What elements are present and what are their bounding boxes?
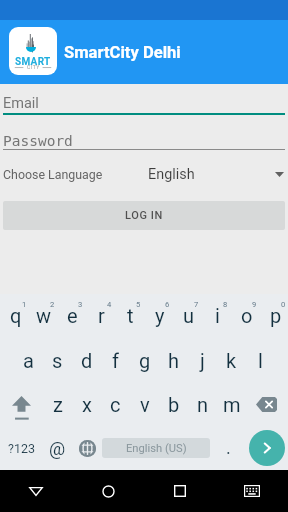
button[interactable]: s [42, 338, 71, 382]
staticText: English [148, 166, 195, 183]
staticText: Choose Language [3, 167, 103, 182]
button[interactable]: j [187, 338, 216, 382]
staticText: k [226, 349, 237, 372]
button[interactable]: Change keyboard language [72, 426, 102, 470]
staticText: d [81, 349, 93, 372]
staticText: LOG IN [125, 209, 163, 222]
staticText: 7 [194, 300, 199, 309]
staticText: . [226, 437, 231, 458]
staticText: 9 [252, 300, 257, 309]
staticText: English (US) [126, 442, 187, 455]
button[interactable]: 0 [259, 294, 288, 338]
staticText: r [98, 304, 105, 327]
button[interactable]: English (US) [102, 438, 210, 458]
staticText: q [10, 304, 22, 327]
staticText: x [82, 393, 92, 416]
staticText: 0 [281, 300, 286, 309]
staticText: @ [49, 438, 66, 459]
button[interactable]: b [158, 382, 187, 426]
staticText: 5 [136, 300, 141, 309]
staticText: 2 [50, 300, 55, 309]
staticText: f [112, 349, 119, 372]
staticText: u [183, 304, 195, 327]
button[interactable]: n [187, 382, 216, 426]
button[interactable]: d [71, 338, 100, 382]
staticText: t [127, 304, 134, 327]
button[interactable]: SmartCity logo [9, 27, 57, 75]
button[interactable]: m [216, 382, 245, 426]
staticText: 4 [107, 300, 112, 309]
button[interactable]: 7 [172, 294, 201, 338]
staticText: b [168, 393, 180, 416]
staticText: 8 [223, 300, 228, 309]
staticText: h [168, 349, 180, 372]
staticText: v [140, 393, 150, 416]
staticText: g [139, 349, 151, 372]
staticText: e [67, 304, 78, 327]
button[interactable]: LOG IN [3, 201, 285, 230]
staticText: w [36, 304, 52, 327]
staticText: 1 [22, 300, 27, 309]
button[interactable]: a [13, 338, 42, 382]
button[interactable]: 9 [230, 294, 259, 338]
button[interactable]: Enter [246, 426, 288, 470]
button[interactable]: 3 [56, 294, 85, 338]
button[interactable]: Choose Language [3, 159, 285, 189]
staticText: a [23, 349, 34, 372]
staticText: SmartCity Delhi [64, 43, 181, 62]
button[interactable]: h [158, 338, 187, 382]
staticText: o [241, 304, 253, 327]
button[interactable]: g [129, 338, 158, 382]
staticText: n [197, 393, 209, 416]
button[interactable]: 8 [201, 294, 230, 338]
staticText: Password [3, 133, 73, 150]
staticText: j [200, 349, 205, 372]
button[interactable]: 4 [85, 294, 114, 338]
staticText: p [270, 304, 282, 327]
staticText: SMART [15, 56, 51, 68]
button[interactable]: Home [72, 470, 144, 512]
staticText: ?123 [8, 441, 35, 456]
button[interactable]: Backspace [245, 382, 288, 426]
button[interactable]: z [42, 382, 71, 426]
button[interactable]: c [100, 382, 129, 426]
staticText: m [223, 393, 241, 416]
button[interactable]: Email [0, 94, 288, 124]
button[interactable]: @ [43, 426, 72, 470]
button[interactable]: Shift [0, 382, 42, 426]
button[interactable]: Recent apps [144, 470, 216, 512]
staticText: 6 [165, 300, 170, 309]
button[interactable]: 2 [28, 294, 56, 338]
staticText: CITY [27, 64, 40, 70]
button[interactable]: 6 [143, 294, 172, 338]
button[interactable]: Keyboard [216, 470, 288, 512]
button[interactable]: ?123 [0, 426, 43, 470]
staticText: 3 [78, 300, 83, 309]
staticText: c [110, 393, 121, 416]
button[interactable]: 5 [114, 294, 143, 338]
button[interactable]: k [216, 338, 245, 382]
button[interactable]: 1 [0, 294, 28, 338]
button[interactable]: . [210, 426, 246, 470]
button[interactable]: Back [0, 470, 72, 512]
button[interactable]: x [71, 382, 100, 426]
staticText: l [258, 349, 263, 372]
staticText: y [155, 304, 165, 327]
button[interactable]: Password [0, 132, 288, 162]
staticText: i [215, 304, 220, 327]
staticText: s [52, 349, 63, 372]
staticText: Email [3, 95, 39, 112]
button[interactable]: f [100, 338, 129, 382]
staticText: z [53, 393, 63, 416]
button[interactable]: v [129, 382, 158, 426]
button[interactable]: l [245, 338, 274, 382]
